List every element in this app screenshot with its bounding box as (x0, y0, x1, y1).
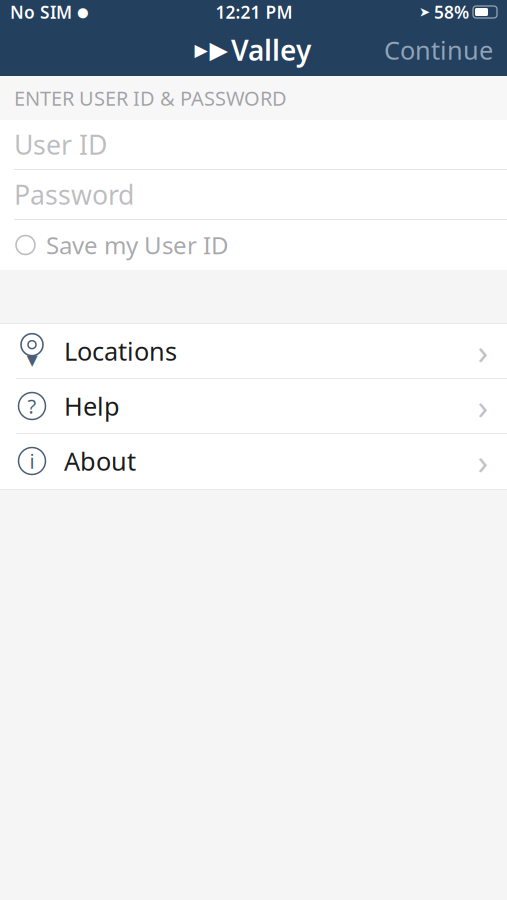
staticText: › (477, 438, 488, 484)
staticText: i (29, 448, 34, 474)
staticText: 12:21 PM (215, 0, 292, 23)
button[interactable]: ? (0, 379, 507, 434)
staticText: Locations (64, 334, 177, 368)
button[interactable]: Save my User ID (0, 220, 507, 270)
staticText: › (477, 328, 488, 374)
staticText: Valley (231, 31, 311, 69)
staticText: Continue (384, 33, 493, 67)
staticText: › (477, 383, 488, 429)
button[interactable]: Continue (370, 25, 507, 75)
staticText: ▶ (209, 36, 227, 64)
staticText: ENTER USER ID & PASSWORD (14, 85, 287, 111)
staticText: No SIM (10, 0, 72, 23)
staticText: Save my User ID (46, 229, 229, 261)
staticText: 58% (434, 0, 469, 23)
button[interactable]: ▼ (0, 324, 507, 379)
staticText: Help (64, 389, 120, 423)
staticText: ➤ (419, 4, 430, 19)
staticText: ▶ (194, 40, 207, 60)
staticText: ● (77, 4, 89, 19)
button[interactable]: i (0, 434, 507, 489)
staticText: ? (27, 393, 36, 419)
staticText: User ID (14, 127, 107, 162)
staticText: Password (14, 177, 134, 212)
staticText: About (64, 444, 136, 478)
staticText: ▼ (26, 352, 37, 368)
